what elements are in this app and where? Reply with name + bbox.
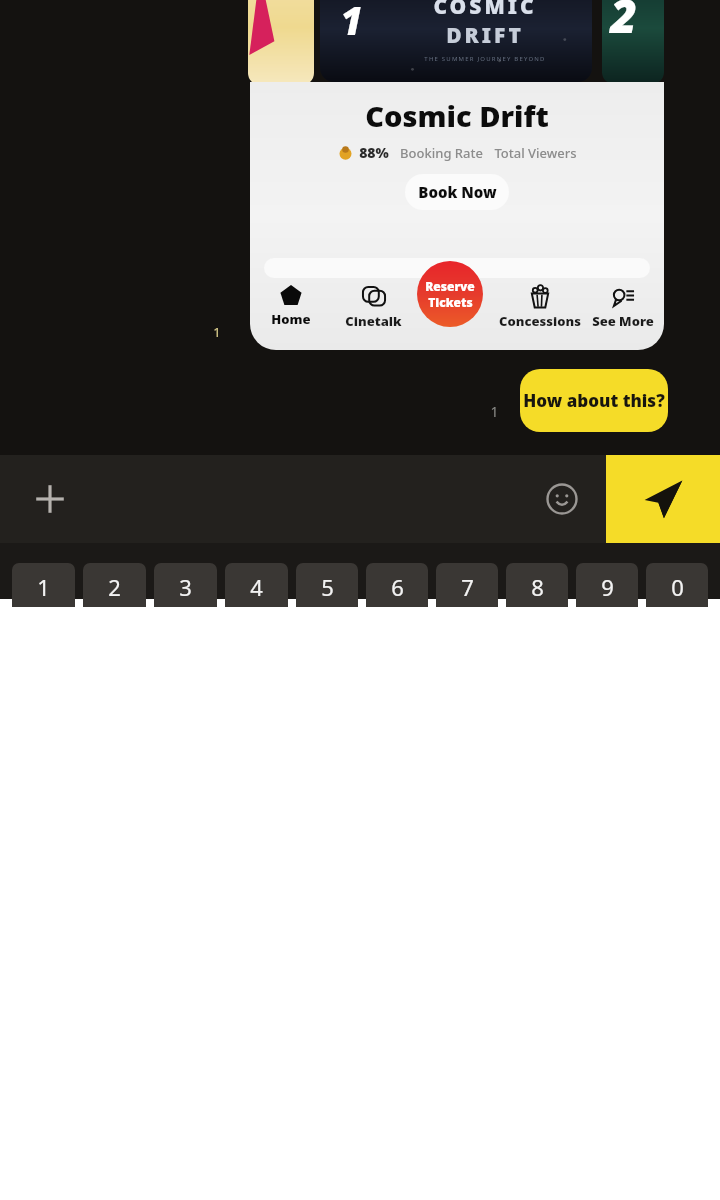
button[interactable]: 7 [436, 563, 498, 607]
staticText: Cinetalk [345, 312, 402, 330]
button[interactable]: 4 [225, 563, 288, 607]
staticText: Concessions [499, 312, 581, 330]
button[interactable]: Send [606, 455, 720, 543]
staticText: 2 [108, 572, 121, 602]
staticText: Book Now [418, 182, 497, 202]
staticText: 2 [610, 0, 637, 47]
staticText: 1 [213, 323, 221, 341]
button[interactable]: Concessions [498, 280, 581, 330]
staticText: 1 [490, 402, 499, 421]
staticText: DRIFT [446, 21, 524, 50]
staticText: 3 [179, 572, 192, 602]
staticText: 9 [601, 572, 614, 602]
button[interactable]: Home [250, 280, 332, 328]
staticText: 1 [340, 0, 363, 46]
staticText: Tickets [428, 294, 473, 310]
button[interactable]: Emoji [534, 471, 590, 527]
staticText: 7 [461, 572, 474, 602]
button[interactable]: 5 [296, 563, 358, 607]
button[interactable]: Reserve [417, 261, 483, 327]
staticText: COSMIC [433, 0, 537, 21]
button[interactable]: 2 [83, 563, 146, 607]
button[interactable]: Book Now [405, 174, 509, 210]
staticText: Home [271, 310, 311, 328]
staticText: See More [592, 312, 654, 330]
staticText: Booking Rate [400, 144, 483, 162]
staticText: How about this? [523, 389, 665, 412]
button[interactable]: 0 [646, 563, 708, 607]
staticText: THE SUMMER JOURNEY BEYOND [424, 55, 546, 63]
staticText: 0 [671, 572, 684, 602]
staticText: Reserve [425, 278, 475, 294]
staticText: 8 [531, 572, 544, 602]
staticText: 1 [37, 572, 50, 602]
button[interactable]: How about this? [520, 369, 668, 432]
staticText: 88% [359, 143, 389, 162]
staticText: Cosmic Drift [365, 96, 549, 135]
button[interactable]: 9 [576, 563, 638, 607]
button[interactable]: 1 [12, 563, 75, 607]
staticText: 5 [321, 572, 334, 602]
staticText: 6 [391, 572, 404, 602]
button[interactable]: See More [581, 280, 664, 330]
button[interactable]: 6 [366, 563, 428, 607]
staticText: Total Viewers [494, 144, 577, 162]
button[interactable]: Cinetalk [332, 280, 415, 330]
staticText: 4 [250, 572, 263, 602]
button[interactable]: Attach [22, 471, 78, 527]
button[interactable]: 8 [506, 563, 568, 607]
button[interactable]: 1 [320, 0, 592, 82]
button[interactable]: 3 [154, 563, 217, 607]
